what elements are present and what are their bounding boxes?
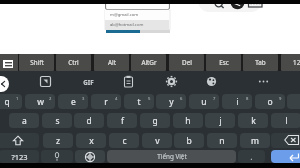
- staticText: w: [37, 96, 44, 108]
- staticText: Ctrl: [68, 58, 79, 67]
- staticText: h: [185, 115, 191, 127]
- button[interactable]: Hide keyboard: [0, 54, 18, 71]
- staticText: o: [267, 96, 273, 108]
- staticText: k: [251, 115, 256, 127]
- button[interactable]: m: [240, 133, 270, 148]
- button[interactable]: .: [238, 150, 265, 163]
- button[interactable]: q: [0, 94, 22, 109]
- staticText: v: [155, 135, 160, 147]
- staticText: 7: [213, 96, 216, 102]
- staticText: e: [71, 96, 76, 108]
- button[interactable]: Del: [169, 54, 204, 71]
- button[interactable]: ?123: [0, 150, 39, 163]
- button[interactable]: v: [142, 133, 172, 148]
- staticText: 5: [148, 96, 151, 102]
- staticText: b: [186, 135, 192, 147]
- staticText: 1: [16, 96, 19, 102]
- button[interactable]: n: [207, 133, 237, 148]
- button[interactable]: GIF: [78, 75, 98, 89]
- button[interactable]: More options: [257, 75, 270, 88]
- button[interactable]: x: [76, 133, 106, 148]
- staticText: 9: [279, 96, 282, 102]
- staticText: .: [250, 151, 253, 163]
- button[interactable]: d: [74, 113, 104, 128]
- staticText: 4: [115, 96, 118, 102]
- staticText: 8: [246, 96, 249, 102]
- button[interactable]: z: [43, 133, 73, 148]
- staticText: Tiếng Việt: [157, 152, 187, 161]
- staticText: Tab: [255, 58, 266, 67]
- button[interactable]: m@gmail.com: [105, 10, 169, 20]
- button[interactable]: h: [173, 113, 203, 128]
- button[interactable]: Voice input: [41, 150, 73, 163]
- button[interactable]: Change language: [75, 150, 105, 163]
- staticText: ?123: [11, 152, 28, 162]
- button[interactable]: l: [271, 113, 300, 128]
- button[interactable]: r: [91, 94, 121, 109]
- button[interactable]: Theme: [205, 75, 218, 88]
- button[interactable]: y: [156, 94, 186, 109]
- staticText: i: [236, 96, 239, 108]
- button[interactable]: w: [25, 94, 55, 109]
- button[interactable]: e: [58, 94, 88, 109]
- button[interactable]: g: [140, 113, 170, 128]
- button[interactable]: a: [9, 113, 39, 128]
- staticText: Esc: [219, 58, 229, 67]
- staticText: u: [201, 96, 207, 108]
- staticText: ab@hotmail.com: [110, 22, 144, 28]
- staticText: c: [122, 135, 127, 147]
- button[interactable]: j: [205, 113, 235, 128]
- button[interactable]: Stickers: [39, 75, 52, 88]
- button[interactable]: c: [109, 133, 139, 148]
- staticText: Del: [182, 58, 192, 67]
- staticText: l: [285, 115, 288, 127]
- button[interactable]: Shift: [19, 54, 54, 71]
- button[interactable]: i: [222, 94, 252, 109]
- button[interactable]: u: [189, 94, 219, 109]
- staticText: m@gmail.com: [110, 12, 139, 18]
- staticText: 3: [82, 96, 85, 102]
- button[interactable]: Enter: [271, 150, 300, 163]
- staticText: Alt: [108, 58, 116, 67]
- staticText: y: [169, 96, 174, 108]
- staticText: x: [89, 135, 94, 147]
- staticText: m: [251, 135, 259, 147]
- button[interactable]: Backspace: [271, 133, 300, 148]
- staticText: a: [22, 115, 27, 127]
- button[interactable]: Back: [0, 76, 9, 92]
- button[interactable]: Shift: [0, 133, 39, 148]
- button[interactable]: Tab: [243, 54, 278, 71]
- staticText: 2: [49, 96, 52, 102]
- button[interactable]: Settings: [165, 75, 178, 88]
- staticText: GIF: [83, 78, 94, 86]
- staticText: d: [86, 115, 92, 127]
- button[interactable]: ab@hotmail.com: [105, 20, 169, 30]
- staticText: r: [104, 96, 108, 108]
- button[interactable]: s: [42, 113, 72, 128]
- button[interactable]: Clipboard: [122, 75, 135, 88]
- button[interactable]: b: [174, 133, 204, 148]
- button[interactable]: t: [124, 94, 154, 109]
- button[interactable]: 123: [281, 54, 300, 71]
- staticText: g: [152, 115, 158, 127]
- button[interactable]: o: [255, 94, 285, 109]
- button[interactable]: f: [107, 113, 137, 128]
- staticText: 123: [293, 58, 300, 67]
- button[interactable]: Tiếng Việt: [107, 150, 236, 163]
- button[interactable]: Ctrl: [56, 54, 91, 71]
- button[interactable]: AltGr: [131, 54, 166, 71]
- button[interactable]: Alt: [94, 54, 129, 71]
- staticText: z: [56, 135, 60, 147]
- staticText: n: [219, 135, 225, 147]
- staticText: j: [219, 115, 222, 127]
- staticText: s: [55, 115, 60, 127]
- button[interactable]: Esc: [206, 54, 241, 71]
- button[interactable]: k: [238, 113, 268, 128]
- staticText: 6: [180, 96, 183, 102]
- button[interactable]: Text selection actions: [198, 0, 262, 12]
- staticText: AltGr: [141, 58, 157, 67]
- staticText: f: [121, 115, 124, 127]
- staticText: Shift: [30, 58, 44, 67]
